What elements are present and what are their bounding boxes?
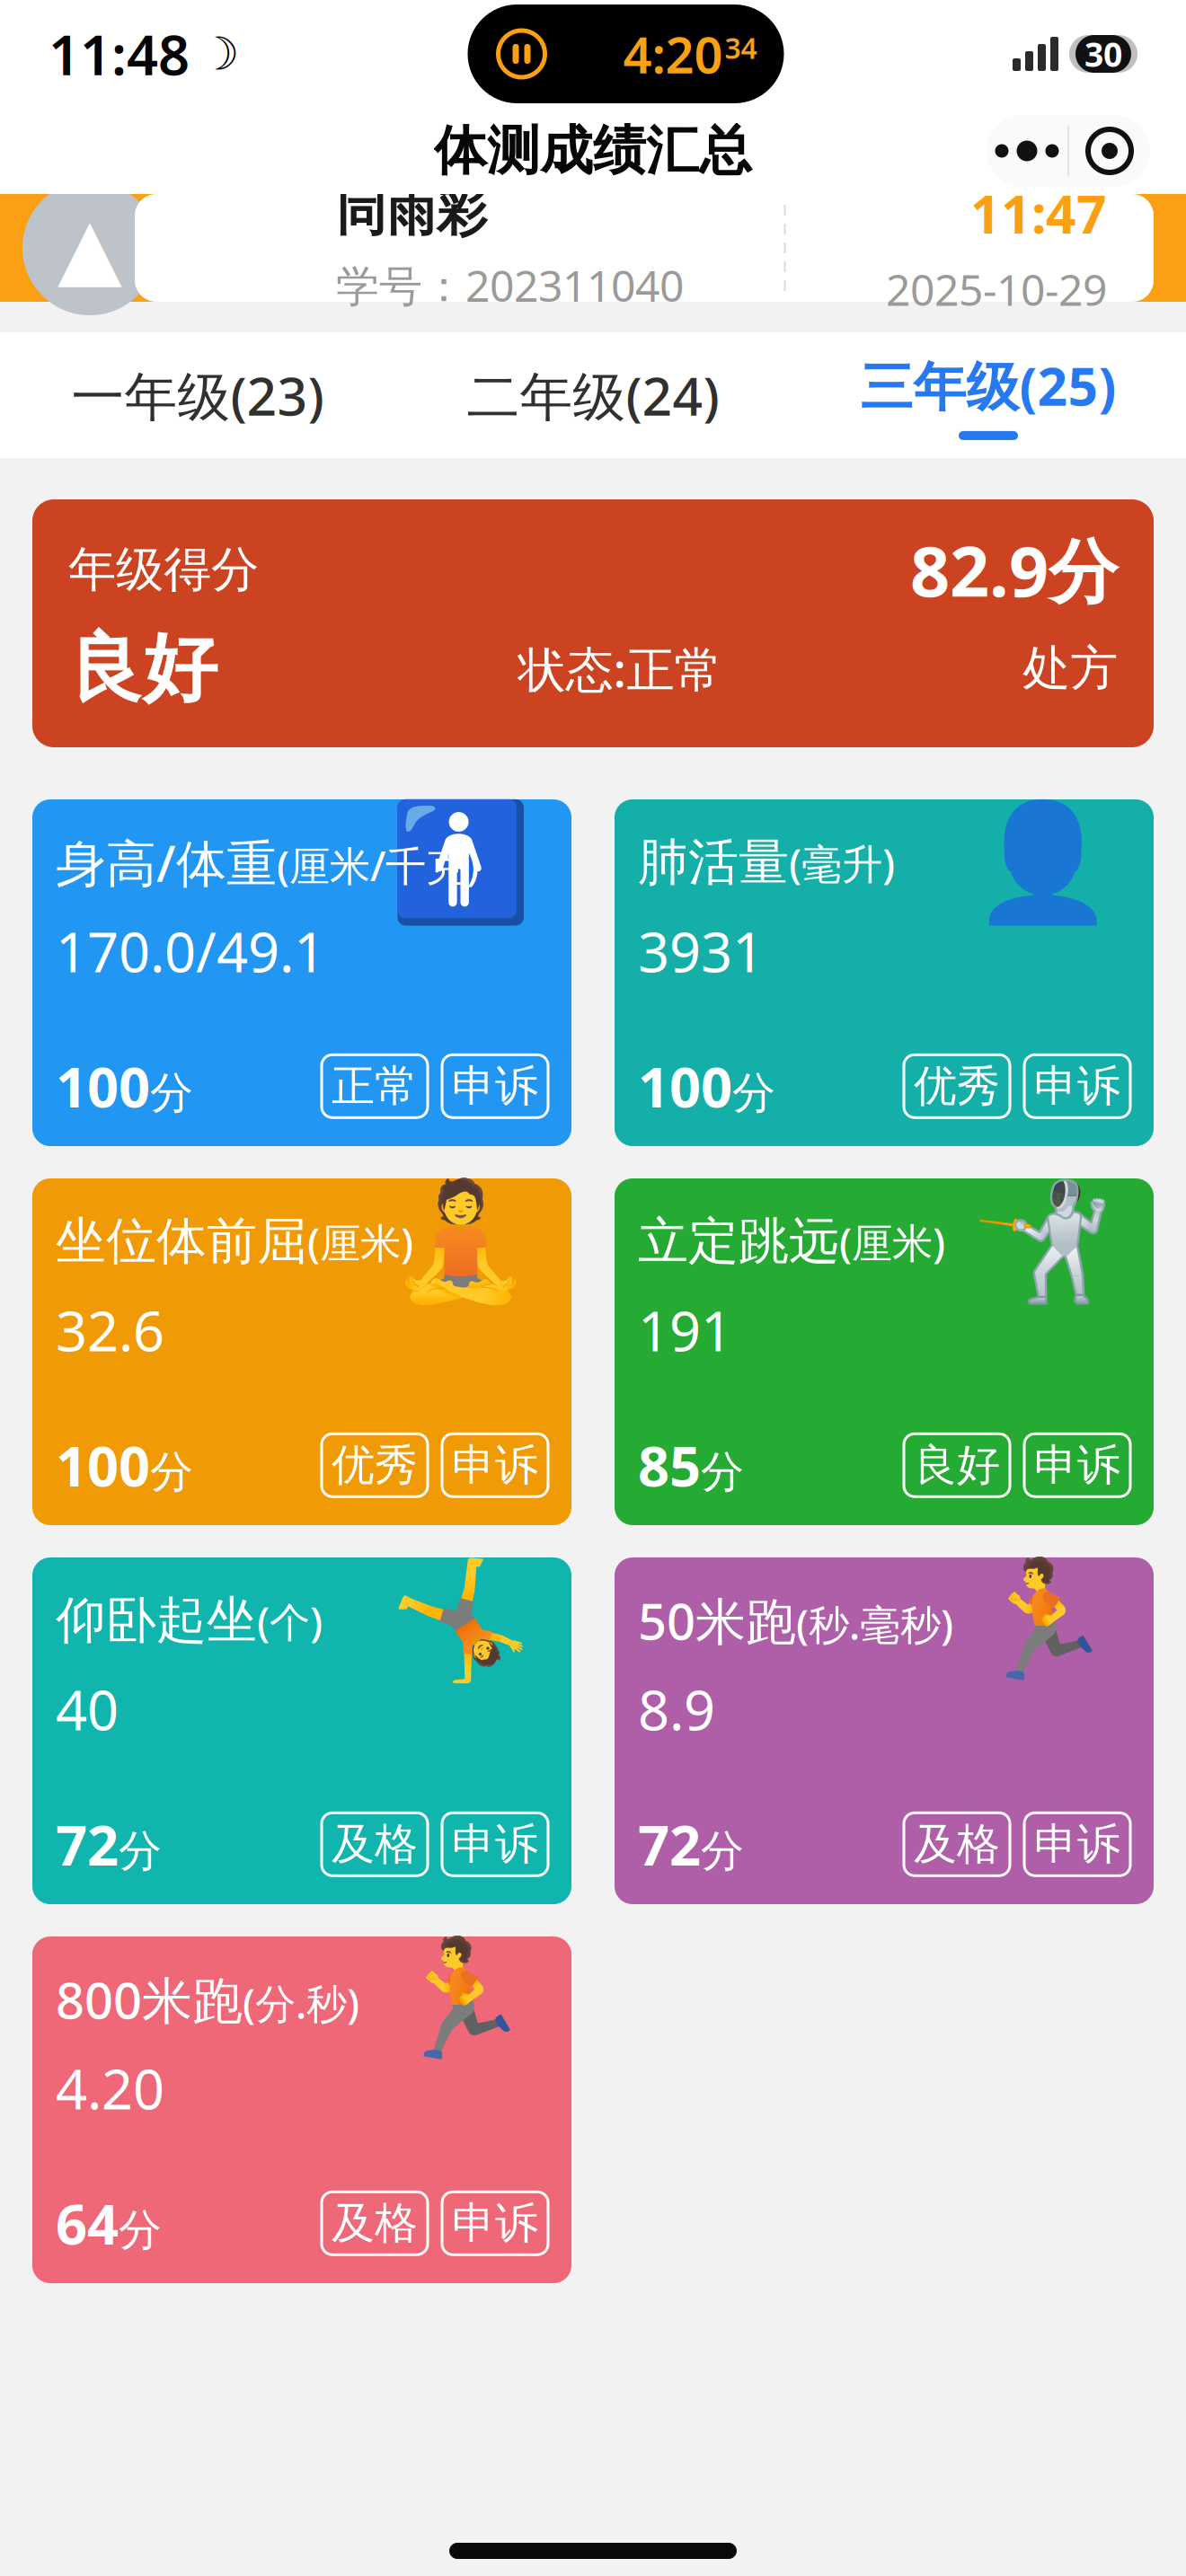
staticText: 立定跳远: [638, 1210, 839, 1272]
staticText: 40: [56, 1672, 119, 1746]
button[interactable]: 👤: [615, 799, 1154, 1146]
staticText: ☽: [199, 28, 239, 80]
staticText: 85: [638, 1429, 701, 1502]
staticText: 分: [701, 1825, 744, 1878]
staticText: (毫升): [789, 836, 895, 890]
staticText: 三年级(25): [860, 350, 1116, 420]
staticText: 🏃: [389, 1934, 532, 2065]
button[interactable]: 一年级(23): [0, 332, 395, 458]
staticText: 4.20: [56, 2051, 164, 2125]
staticText: 👤: [971, 797, 1114, 928]
staticText: 11:48: [49, 17, 190, 90]
staticText: 82.9分: [910, 524, 1118, 616]
staticText: 分: [732, 1067, 775, 1120]
staticText: (厘米): [839, 1215, 945, 1269]
staticText: 状态:正常: [518, 637, 722, 700]
staticText: 72: [638, 1808, 701, 1881]
staticText: 优秀: [332, 1439, 418, 1492]
staticText: 及格: [332, 1818, 418, 1871]
staticText: 优秀: [914, 1060, 1000, 1113]
button[interactable]: Close: [1069, 117, 1150, 185]
staticText: 4:20: [623, 20, 723, 87]
staticText: 🏃: [971, 1555, 1114, 1686]
staticText: 34: [725, 29, 757, 67]
staticText: 🤺: [971, 1176, 1114, 1307]
staticText: 800米跑: [56, 1966, 243, 2033]
button[interactable]: 🏃: [615, 1557, 1154, 1904]
staticText: 50米跑: [638, 1587, 796, 1654]
staticText: 170.0/49.1: [56, 914, 325, 987]
staticText: (厘米/千克): [277, 838, 479, 892]
staticText: 分: [150, 1446, 193, 1499]
staticText: 良好: [68, 623, 217, 714]
staticText: 🧘: [389, 1176, 532, 1307]
button[interactable]: More: [987, 117, 1067, 185]
staticText: 良好: [914, 1439, 1000, 1492]
button[interactable]: 🏃: [32, 1936, 571, 2283]
button[interactable]: 三年级(25): [791, 332, 1186, 458]
button[interactable]: 🤸: [32, 1557, 571, 1904]
staticText: 年级得分: [68, 540, 259, 599]
staticText: 申诉: [452, 1818, 538, 1871]
staticText: 32.6: [56, 1293, 164, 1367]
staticText: 正常: [332, 1060, 418, 1113]
staticText: 申诉: [1034, 1439, 1120, 1492]
staticText: 处方: [1022, 639, 1118, 698]
staticText: 100: [56, 1429, 150, 1502]
button[interactable]: 🚹: [32, 799, 571, 1146]
staticText: 191: [638, 1293, 732, 1367]
staticText: 64: [56, 2187, 119, 2260]
staticText: 72: [56, 1808, 119, 1881]
staticText: (分.秒): [243, 1976, 359, 2030]
button[interactable]: 处方: [1022, 639, 1118, 698]
button[interactable]: 二年级(24): [395, 332, 791, 458]
staticText: 100: [56, 1050, 150, 1123]
staticText: 2025-10-29: [886, 261, 1107, 318]
button[interactable]: 🧘: [32, 1178, 571, 1525]
staticText: 分: [150, 1067, 193, 1120]
staticText: 及格: [914, 1818, 1000, 1871]
staticText: 申诉: [452, 1439, 538, 1492]
staticText: 🚹: [389, 797, 532, 928]
staticText: 及格: [332, 2197, 418, 2250]
staticText: 申诉: [1034, 1818, 1120, 1871]
staticText: (个): [257, 1594, 323, 1648]
staticText: 🤸: [389, 1555, 532, 1686]
staticText: 8.9: [638, 1672, 715, 1746]
staticText: 仰卧起坐: [56, 1589, 257, 1651]
staticText: 肺活量: [638, 831, 789, 893]
button[interactable]: 🤺: [615, 1178, 1154, 1525]
staticText: 分: [701, 1446, 744, 1499]
staticText: 学号：202311040: [336, 256, 684, 314]
staticText: 分: [119, 2204, 162, 2257]
staticText: 同雨彩: [336, 182, 487, 244]
staticText: 100: [638, 1050, 732, 1123]
staticText: 申诉: [452, 1060, 538, 1113]
staticText: 身高/体重: [56, 829, 277, 896]
staticText: 一年级(23): [71, 360, 324, 430]
staticText: 申诉: [452, 2197, 538, 2250]
staticText: (秒.毫秒): [796, 1597, 953, 1651]
staticText: 3931: [638, 914, 764, 987]
staticText: 30: [1084, 32, 1122, 76]
staticText: 分: [119, 1825, 162, 1878]
staticText: (厘米): [307, 1215, 413, 1269]
staticText: 体测成绩汇总: [434, 119, 752, 183]
staticText: 11:47: [970, 178, 1107, 248]
staticText: ▲: [58, 200, 122, 295]
staticText: 坐位体前屈: [56, 1210, 307, 1272]
staticText: 二年级(24): [467, 360, 719, 430]
staticText: 申诉: [1034, 1060, 1120, 1113]
